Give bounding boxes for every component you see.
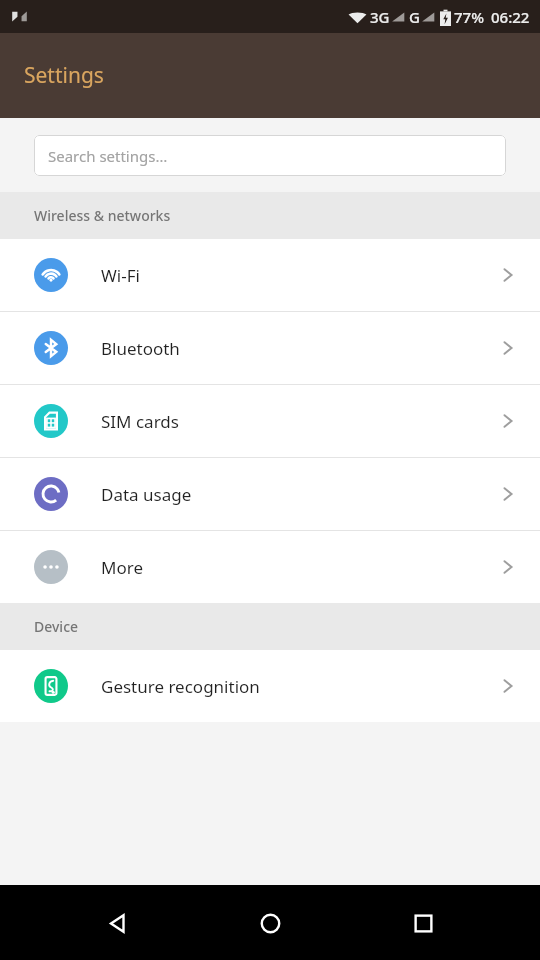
button[interactable]: Search settings… [34,135,506,176]
staticText: Device [34,617,79,636]
staticText: Wireless & networks [34,206,171,225]
staticText: 3G [370,7,390,27]
staticText: Gesture recognition [101,675,260,698]
button[interactable]: Data usage [0,458,540,530]
button[interactable]: Recent apps [387,887,459,959]
staticText: 06:22 [491,7,530,27]
button[interactable]: Bluetooth [0,312,540,384]
staticText: Settings [24,61,104,90]
staticText: SIM cards [101,410,179,433]
button[interactable]: More [0,531,540,603]
staticText: Search settings… [48,146,168,166]
staticText: Data usage [101,483,192,506]
staticText: More [101,556,143,579]
button[interactable]: Home [234,887,306,959]
staticText: 77% [454,7,484,27]
button[interactable]: Wi-Fi [0,239,540,311]
staticText: Bluetooth [101,337,180,360]
button[interactable]: SIM cards [0,385,540,457]
button[interactable]: Back [81,887,153,959]
button[interactable]: Gesture recognition [0,650,540,722]
staticText: Wi-Fi [101,264,140,287]
staticText: G [409,7,420,27]
